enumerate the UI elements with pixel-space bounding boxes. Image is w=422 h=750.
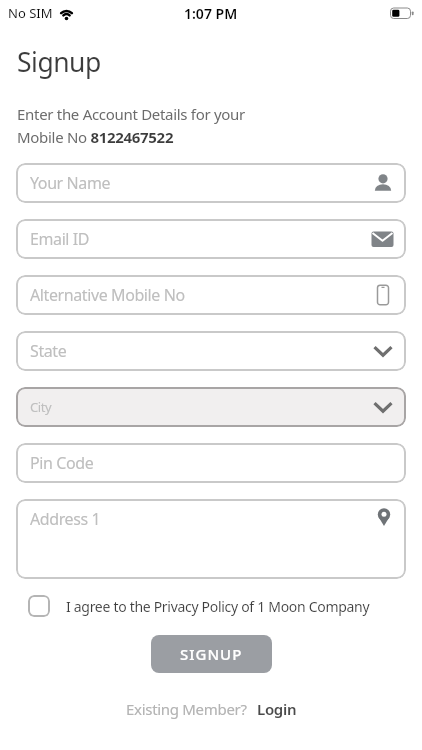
staticText: Login [257, 699, 297, 719]
staticText: Email ID [30, 228, 90, 250]
staticText: SIGNUP [180, 644, 243, 664]
button[interactable]: Login [257, 699, 297, 719]
button[interactable]: Email ID [16, 219, 406, 259]
staticText: City [30, 398, 52, 416]
staticText: Your Name [30, 172, 111, 194]
button[interactable]: Address 1 [16, 499, 406, 579]
button[interactable]: State [16, 331, 406, 371]
button[interactable]: Your Name [16, 163, 406, 203]
staticText: Signup [17, 44, 101, 80]
button[interactable]: SIGNUP [151, 635, 272, 673]
staticText: Existing Member? [126, 699, 247, 719]
button[interactable]: Alternative Mobile No [16, 275, 406, 315]
button[interactable]: I agree to the Privacy Policy of 1 Moon … [28, 595, 370, 617]
button[interactable]: Pin Code [16, 443, 406, 483]
staticText: 1:07 PM [184, 4, 238, 23]
staticText: Enter the Account Details for your Mobil… [17, 104, 245, 147]
staticText: State [30, 340, 67, 362]
staticText: Pin Code [30, 452, 94, 474]
staticText: Address 1 [30, 508, 101, 530]
staticText: No SIM [8, 4, 53, 22]
button[interactable]: City [16, 387, 406, 427]
staticText: I agree to the Privacy Policy of 1 Moon … [66, 597, 370, 616]
staticText: Alternative Mobile No [30, 284, 185, 306]
